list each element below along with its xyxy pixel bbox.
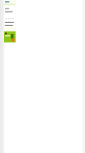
button[interactable]: Article card <box>4 0 16 43</box>
